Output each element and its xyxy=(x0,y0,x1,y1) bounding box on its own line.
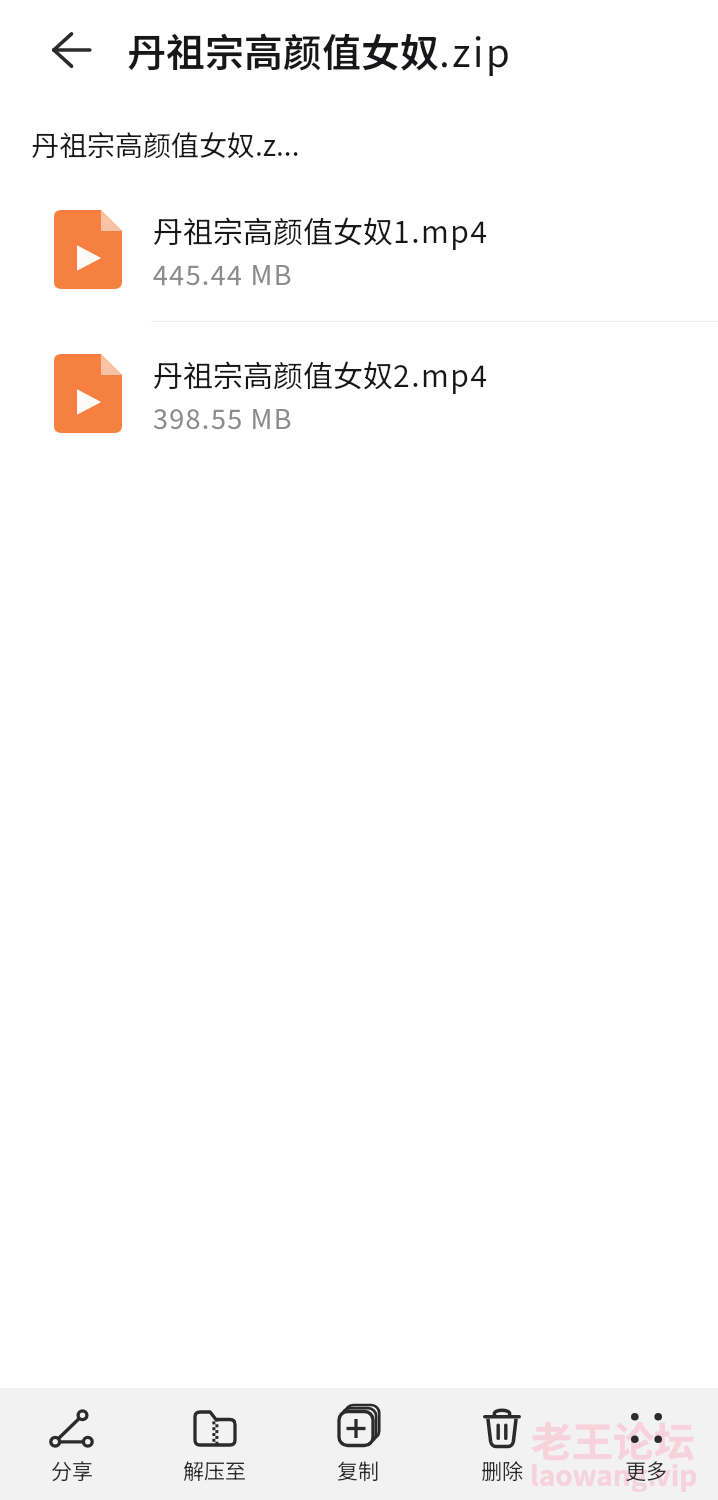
button[interactable]: 丹祖宗高颜值女奴2.mp4 xyxy=(0,324,718,462)
staticText: laowang.vip xyxy=(530,1454,698,1495)
button[interactable]: 分享 xyxy=(0,1388,143,1500)
staticText: 丹祖宗高颜值女奴1.mp4 xyxy=(153,208,489,251)
staticText: 解压至 xyxy=(183,1455,246,1485)
button[interactable]: 解压至 xyxy=(143,1388,286,1500)
staticText: 丹祖宗高颜值女奴.zip xyxy=(127,22,513,78)
staticText: 更多 xyxy=(625,1455,667,1485)
staticText: 丹祖宗高颜值女奴.z... xyxy=(31,124,300,165)
button[interactable]: 删除 xyxy=(430,1388,574,1500)
staticText: 445.44 MB xyxy=(153,254,293,293)
button[interactable]: 复制 xyxy=(286,1388,430,1500)
staticText: 分享 xyxy=(51,1455,93,1485)
button[interactable]: 丹祖宗高颜值女奴1.mp4 xyxy=(0,180,718,318)
staticText: 复制 xyxy=(337,1455,379,1485)
staticText: 老王论坛 xyxy=(531,1409,695,1468)
staticText: 删除 xyxy=(481,1455,523,1485)
staticText: 398.55 MB xyxy=(153,398,293,437)
staticText: 丹祖宗高颜值女奴2.mp4 xyxy=(153,352,489,395)
button[interactable]: Back xyxy=(41,20,101,80)
button[interactable]: 更多 xyxy=(574,1388,718,1500)
